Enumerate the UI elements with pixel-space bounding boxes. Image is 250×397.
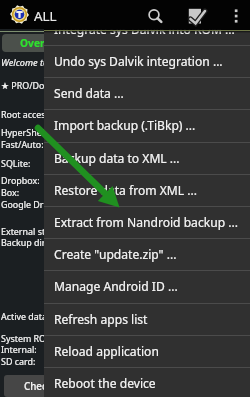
button[interactable]: Reboot the device bbox=[44, 367, 250, 397]
staticText: Welcome to Titanium Backup bbox=[1, 56, 120, 69]
staticText: Reload application bbox=[54, 343, 159, 359]
staticText: Overview bbox=[20, 36, 68, 50]
staticText: External storage: bbox=[1, 225, 72, 237]
staticText: Refresh apps list bbox=[54, 311, 148, 327]
button[interactable]: Restore data from XML ... bbox=[44, 174, 250, 206]
button[interactable]: Search bbox=[141, 0, 167, 29]
staticText: Send data ... bbox=[54, 85, 124, 101]
button[interactable]: Overview bbox=[2, 34, 68, 52]
button[interactable]: Undo sys Dalvik integration ... bbox=[44, 45, 250, 77]
staticText: System ROM: bbox=[1, 332, 57, 344]
button[interactable]: Titanium Backup bbox=[10, 5, 29, 24]
button[interactable]: Backup data to XML ... bbox=[44, 142, 250, 174]
button[interactable]: Refresh apps list bbox=[44, 303, 250, 335]
staticText: Fast/Auto: bbox=[1, 138, 44, 150]
staticText: Import backup (.TiBkp) ... bbox=[54, 117, 196, 133]
staticText: Active data: bbox=[1, 310, 50, 322]
button[interactable]: Reload application bbox=[44, 335, 250, 367]
button[interactable]: Extract from Nandroid backup ... bbox=[44, 206, 250, 238]
button[interactable]: Batch actions bbox=[185, 0, 211, 29]
button[interactable]: Send data ... bbox=[44, 77, 250, 109]
staticText: HyperShell: bbox=[1, 126, 49, 138]
staticText: Extract from Nandroid backup ... bbox=[54, 214, 238, 230]
staticText: Manage Android ID ... bbox=[54, 278, 178, 294]
staticText: Create "update.zip" ... bbox=[54, 246, 177, 262]
staticText: Reboot the device bbox=[54, 375, 156, 391]
staticText: SQLite: bbox=[1, 157, 31, 169]
staticText: Integrate sys Dalvik into ROM ... bbox=[54, 21, 235, 37]
staticText: Backup data to XML ... bbox=[54, 150, 180, 166]
staticText: Root access: bbox=[1, 108, 53, 120]
staticText: Box: bbox=[1, 186, 20, 198]
staticText: SD card: bbox=[1, 355, 36, 367]
button[interactable]: Integrate sys Dalvik into ROM ... bbox=[44, 13, 250, 45]
staticText: Check bbox=[24, 380, 50, 393]
button[interactable]: Check bbox=[4, 375, 50, 397]
staticText: Internal: bbox=[1, 343, 37, 355]
button[interactable]: More options bbox=[226, 0, 246, 29]
button[interactable]: Create "update.zip" ... bbox=[44, 238, 250, 270]
staticText: Backup dir: bbox=[1, 236, 48, 248]
button[interactable]: Manage Android ID ... bbox=[44, 270, 250, 302]
staticText: ALL bbox=[34, 7, 57, 25]
staticText: ★ PRO/Donate key bbox=[1, 79, 80, 91]
staticText: Dropbox: bbox=[1, 174, 40, 186]
button[interactable]: Import backup (.TiBkp) ... bbox=[44, 109, 250, 141]
staticText: Google Drive: bbox=[1, 198, 58, 210]
staticText: Restore data from XML ... bbox=[54, 182, 197, 198]
staticText: Undo sys Dalvik integration ... bbox=[54, 53, 223, 69]
